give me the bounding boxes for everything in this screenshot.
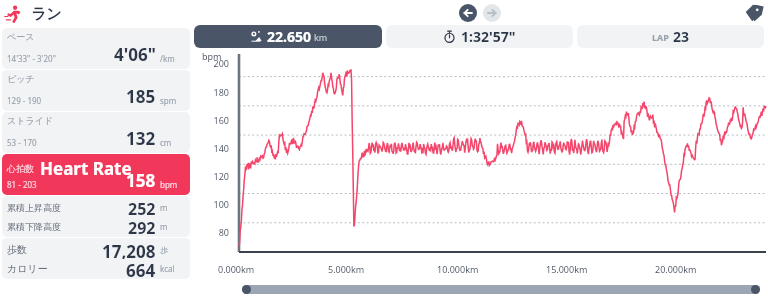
staticText: 129 - 190 bbox=[7, 95, 42, 106]
staticText: 200 bbox=[192, 57, 229, 69]
staticText: /km bbox=[160, 53, 186, 64]
button[interactable]: Previous activity bbox=[459, 4, 477, 22]
staticText: 140 bbox=[192, 142, 229, 154]
button[interactable]: ピッチ bbox=[2, 70, 190, 111]
staticText: 664 bbox=[126, 259, 156, 278]
staticText: 120 bbox=[192, 170, 229, 182]
button[interactable]: LAP bbox=[577, 25, 764, 48]
staticText: 15.000km bbox=[546, 263, 655, 275]
staticText: 292 bbox=[128, 217, 156, 236]
staticText: 132 bbox=[126, 127, 156, 150]
staticText: 歩数 bbox=[7, 243, 27, 256]
staticText: m bbox=[160, 221, 186, 232]
button[interactable]: 累積上昇高度 bbox=[2, 196, 190, 237]
staticText: 累積上昇高度 bbox=[7, 202, 61, 213]
staticText: 5.000km bbox=[328, 263, 437, 275]
staticText: ストライド bbox=[7, 115, 54, 126]
staticText: cm bbox=[160, 137, 186, 148]
staticText: 20.000km bbox=[655, 263, 764, 275]
staticText: spm bbox=[160, 95, 186, 106]
staticText: 22.650 bbox=[267, 27, 311, 46]
staticText: 17,208 bbox=[102, 240, 156, 259]
staticText: ラン bbox=[31, 5, 62, 24]
button[interactable]: Next activity bbox=[483, 4, 501, 22]
button[interactable]: Distance range slider bbox=[242, 285, 760, 294]
staticText: bpm bbox=[160, 179, 186, 190]
staticText: 185 bbox=[126, 85, 156, 108]
staticText: 100 bbox=[192, 198, 229, 210]
staticText: 23 bbox=[673, 27, 690, 46]
staticText: 歩 bbox=[160, 245, 186, 255]
staticText: Heart Rate bbox=[40, 157, 132, 180]
button[interactable]: ストライド bbox=[2, 112, 190, 153]
staticText: km bbox=[314, 31, 328, 43]
button[interactable]: 1:32'57" bbox=[386, 25, 573, 48]
staticText: 160 bbox=[192, 114, 229, 126]
button[interactable]: ペース bbox=[2, 28, 190, 69]
staticText: 4'06" bbox=[114, 43, 156, 66]
staticText: m bbox=[160, 202, 186, 213]
button[interactable]: ラン bbox=[0, 0, 192, 28]
staticText: 80 bbox=[192, 226, 229, 238]
staticText: 0.000km bbox=[218, 263, 328, 275]
button[interactable]: 22.650 bbox=[194, 25, 382, 48]
staticText: ペース bbox=[7, 31, 35, 42]
button[interactable]: 歩数 bbox=[2, 238, 190, 279]
staticText: 心拍数 bbox=[7, 163, 34, 174]
staticText: 10.000km bbox=[437, 263, 546, 275]
staticText: bpm bbox=[202, 50, 222, 62]
staticText: 81 - 203 bbox=[7, 179, 37, 190]
staticText: 53 - 170 bbox=[7, 137, 37, 148]
button[interactable]: Tags bbox=[743, 2, 765, 24]
staticText: kcal bbox=[160, 263, 186, 274]
staticText: 14'33" - 3'20" bbox=[7, 53, 56, 64]
staticText: 累積下降高度 bbox=[7, 221, 61, 232]
staticText: LAP bbox=[652, 31, 669, 43]
button[interactable]: 心拍数 bbox=[2, 154, 190, 195]
staticText: 1:32'57" bbox=[461, 27, 516, 46]
staticText: 158 bbox=[126, 169, 156, 192]
staticText: 252 bbox=[128, 198, 156, 217]
staticText: カロリー bbox=[7, 262, 48, 275]
staticText: 180 bbox=[192, 86, 229, 98]
staticText: ピッチ bbox=[7, 73, 35, 84]
